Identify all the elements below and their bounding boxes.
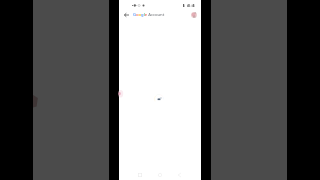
button[interactable]: Back bbox=[121, 10, 131, 20]
staticText: Google Account bbox=[133, 12, 165, 18]
button[interactable]: Home bbox=[156, 171, 164, 179]
button[interactable]: Recent apps bbox=[136, 171, 144, 179]
button[interactable]: Account profile bbox=[191, 12, 197, 18]
